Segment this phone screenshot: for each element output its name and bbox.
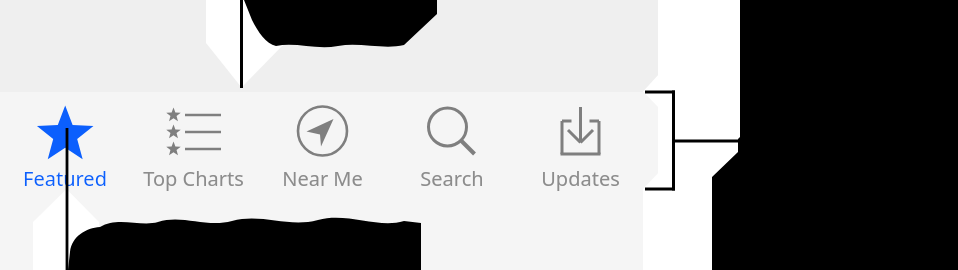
button[interactable]: Featured [0,92,129,270]
button[interactable]: Updates [516,92,645,270]
staticText: Updates [541,165,620,192]
staticText: Search [420,165,484,192]
staticText: Top Charts [143,165,244,192]
button[interactable]: Search [387,92,516,270]
button[interactable]: Top Charts [129,92,258,270]
button[interactable]: Near Me [258,92,387,270]
staticText: Near Me [282,165,363,192]
staticText: Featured [23,165,107,192]
